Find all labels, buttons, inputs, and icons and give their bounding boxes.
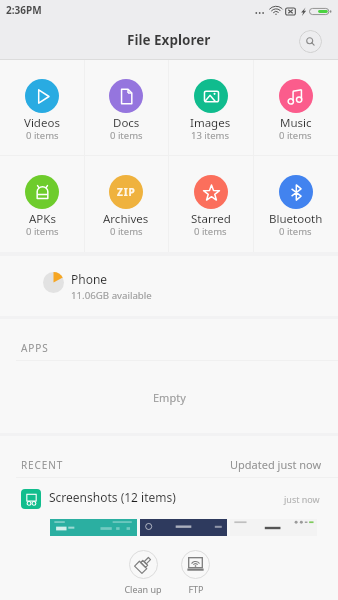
staticText: Bluetooth	[269, 211, 323, 227]
staticText: Docs	[113, 115, 140, 131]
button[interactable]: Music	[253, 60, 338, 155]
staticText: Images	[190, 115, 231, 131]
button[interactable]: FTP	[181, 539, 210, 595]
staticText: 11.06GB available	[71, 289, 152, 302]
button[interactable]: Images	[168, 60, 253, 155]
staticText: 0 items	[279, 225, 312, 238]
staticText: 0 items	[26, 225, 59, 238]
staticText: 2:36PM	[6, 3, 42, 17]
staticText: just now	[284, 493, 320, 505]
staticText: Music	[280, 115, 312, 131]
staticText: Screenshots (12 items)	[49, 489, 176, 505]
button[interactable]: APKs	[0, 156, 84, 252]
staticText: ZIP	[117, 185, 136, 199]
staticText: Updated just now	[230, 457, 322, 472]
staticText: File Explorer	[127, 31, 211, 49]
staticText: FTP	[188, 583, 204, 595]
staticText: APKs	[29, 211, 56, 227]
staticText: Starred	[191, 211, 231, 227]
staticText: RECENT	[21, 458, 64, 472]
staticText: Videos	[24, 115, 60, 131]
staticText: Clean up	[124, 583, 162, 595]
staticText: 13 items	[191, 129, 230, 142]
button[interactable]: Videos	[0, 60, 84, 155]
button[interactable]: Search	[299, 30, 322, 53]
button[interactable]: Screenshots (12 items)	[0, 478, 338, 519]
staticText: 0 items	[110, 129, 143, 142]
button[interactable]: Phone	[0, 256, 338, 316]
staticText: 0 items	[26, 129, 59, 142]
button[interactable]: Starred	[168, 156, 253, 252]
staticText: 0 items	[110, 225, 143, 238]
staticText: Phone	[71, 271, 108, 287]
button[interactable]: Clean up	[124, 539, 162, 595]
staticText: APPS	[21, 341, 49, 355]
button[interactable]: Bluetooth	[253, 156, 338, 252]
staticText: Archives	[103, 211, 149, 227]
button[interactable]: ZIP	[84, 156, 168, 252]
staticText: Empty	[153, 390, 186, 405]
button[interactable]: Docs	[84, 60, 168, 155]
staticText: 0 items	[194, 225, 227, 238]
staticText: 0 items	[279, 129, 312, 142]
